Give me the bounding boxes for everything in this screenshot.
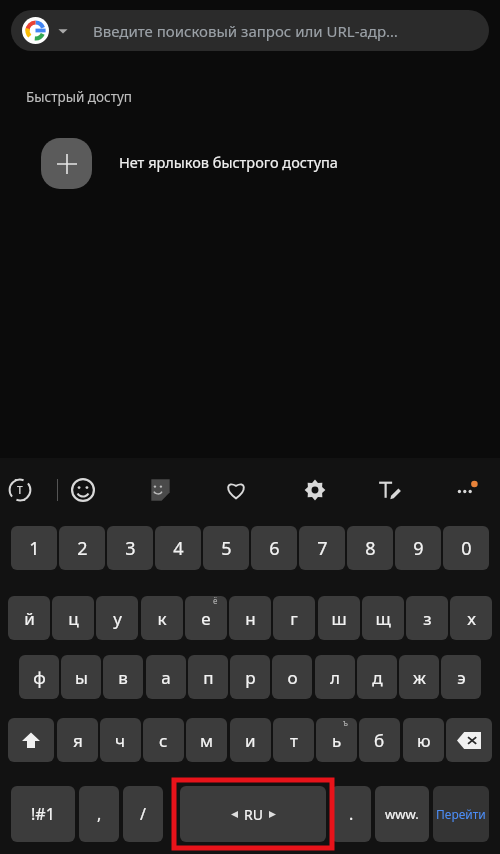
staticText: щ bbox=[375, 607, 391, 630]
staticText: м bbox=[200, 729, 214, 752]
button[interactable]: й bbox=[8, 596, 50, 640]
staticText: ш bbox=[331, 607, 347, 630]
staticText: з bbox=[423, 607, 432, 630]
button[interactable]: . bbox=[331, 786, 371, 842]
staticText: 0 bbox=[461, 536, 472, 561]
button[interactable]: Настройки bbox=[297, 472, 333, 508]
staticText: я bbox=[73, 729, 83, 752]
staticText: / bbox=[140, 803, 146, 825]
button[interactable]: р bbox=[230, 655, 270, 699]
button[interactable]: RU bbox=[180, 786, 326, 842]
staticText: 6 bbox=[269, 536, 280, 561]
button[interactable]: ы bbox=[61, 655, 101, 699]
button[interactable]: з bbox=[406, 596, 448, 640]
staticText: п bbox=[203, 666, 214, 689]
button[interactable]: 7 bbox=[299, 526, 345, 570]
button[interactable]: 6 bbox=[251, 526, 297, 570]
button[interactable]: и bbox=[230, 718, 271, 762]
button[interactable]: к bbox=[141, 596, 183, 640]
button[interactable]: Введите поисковый запрос или URL-адр… bbox=[11, 10, 489, 51]
button[interactable]: 3 bbox=[107, 526, 153, 570]
staticText: х bbox=[467, 607, 476, 630]
button[interactable]: д bbox=[357, 655, 397, 699]
button[interactable]: 5 bbox=[203, 526, 249, 570]
button[interactable]: www. bbox=[375, 786, 429, 842]
staticText: 4 bbox=[173, 536, 184, 561]
button[interactable]: т bbox=[273, 718, 314, 762]
staticText: и bbox=[245, 729, 256, 752]
staticText: й bbox=[24, 607, 35, 630]
button[interactable]: , bbox=[79, 786, 119, 842]
button[interactable]: а bbox=[146, 655, 186, 699]
button[interactable]: Добавить ярлык bbox=[28, 130, 104, 196]
button[interactable]: щ bbox=[362, 596, 404, 640]
button[interactable]: э bbox=[441, 655, 481, 699]
staticText: . bbox=[349, 803, 354, 825]
button[interactable]: Перейти bbox=[433, 786, 489, 842]
button[interactable]: 2 bbox=[59, 526, 105, 570]
staticText: T bbox=[17, 483, 23, 497]
button[interactable]: 8 bbox=[347, 526, 393, 570]
staticText: www. bbox=[385, 805, 419, 823]
button[interactable]: 1 bbox=[11, 526, 57, 570]
button[interactable]: 0 bbox=[443, 526, 489, 570]
button[interactable]: е bbox=[185, 596, 227, 640]
staticText: ч bbox=[115, 729, 126, 752]
staticText: ё bbox=[213, 596, 218, 606]
staticText: Введите поисковый запрос или URL-адр… bbox=[93, 21, 398, 41]
button[interactable]: ж bbox=[399, 655, 439, 699]
staticText: у bbox=[113, 607, 122, 630]
button[interactable]: ч bbox=[100, 718, 141, 762]
button[interactable]: г bbox=[273, 596, 315, 640]
staticText: г bbox=[290, 607, 298, 630]
button[interactable]: ц bbox=[52, 596, 94, 640]
button[interactable]: Ещё bbox=[448, 472, 484, 508]
staticText: е bbox=[201, 607, 211, 630]
staticText: б bbox=[374, 729, 385, 752]
button[interactable]: / bbox=[123, 786, 163, 842]
staticText: Быстрый доступ bbox=[26, 88, 133, 106]
staticText: 1 bbox=[29, 536, 40, 561]
button[interactable]: Перевод bbox=[2, 472, 38, 508]
button[interactable]: п bbox=[188, 655, 228, 699]
button[interactable]: !#1 bbox=[11, 786, 75, 842]
button[interactable]: ь bbox=[316, 718, 357, 762]
button[interactable]: х bbox=[450, 596, 492, 640]
button[interactable]: ш bbox=[318, 596, 360, 640]
staticText: , bbox=[97, 803, 102, 825]
button[interactable]: Стикеры bbox=[141, 472, 177, 508]
staticText: 5 bbox=[221, 536, 232, 561]
button[interactable]: 4 bbox=[155, 526, 201, 570]
button[interactable]: ю bbox=[403, 718, 444, 762]
staticText: ж bbox=[413, 666, 426, 689]
button[interactable]: н bbox=[229, 596, 271, 640]
button[interactable]: б bbox=[359, 718, 400, 762]
button[interactable]: о bbox=[272, 655, 312, 699]
button[interactable]: Удалить bbox=[446, 718, 492, 762]
staticText: 9 bbox=[413, 536, 424, 561]
button[interactable]: в bbox=[103, 655, 143, 699]
staticText: !#1 bbox=[31, 803, 55, 825]
button[interactable]: ф bbox=[19, 655, 59, 699]
staticText: 7 bbox=[317, 536, 328, 561]
button[interactable]: м bbox=[186, 718, 227, 762]
button[interactable]: 9 bbox=[395, 526, 441, 570]
button[interactable]: Избранное bbox=[218, 472, 254, 508]
staticText: ъ bbox=[343, 718, 348, 728]
button[interactable]: я bbox=[57, 718, 98, 762]
staticText: т bbox=[290, 729, 298, 752]
staticText: ю bbox=[417, 729, 431, 752]
button[interactable]: Эмодзи bbox=[65, 472, 101, 508]
button[interactable]: Shift bbox=[8, 718, 54, 762]
staticText: с bbox=[159, 729, 168, 752]
other: Добавить ярлык bbox=[41, 138, 92, 189]
button[interactable]: с bbox=[143, 718, 184, 762]
staticText: а bbox=[161, 666, 171, 689]
staticText: о bbox=[287, 666, 298, 689]
button[interactable]: Редактор текста bbox=[371, 472, 407, 508]
staticText: 8 bbox=[365, 536, 376, 561]
staticText: к bbox=[157, 607, 167, 630]
button[interactable]: л bbox=[315, 655, 355, 699]
staticText: Нет ярлыков быстрого доступа bbox=[119, 152, 338, 172]
button[interactable]: у bbox=[96, 596, 138, 640]
